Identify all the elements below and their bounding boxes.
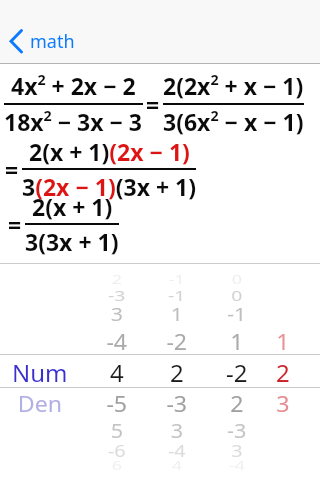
staticText: -1 xyxy=(227,300,247,324)
staticText: = xyxy=(5,154,19,185)
staticText: 0 xyxy=(232,270,242,285)
staticText: 4x2 + 2x − 2 xyxy=(11,70,136,102)
staticText: 2 xyxy=(170,356,184,386)
button[interactable] xyxy=(260,354,310,386)
staticText: 1 xyxy=(276,326,290,354)
staticText: -3 xyxy=(108,285,126,303)
staticText: 5 xyxy=(111,417,123,441)
staticText: -2 xyxy=(166,326,188,354)
staticText: 4 xyxy=(172,456,182,471)
button[interactable] xyxy=(10,354,70,386)
staticText: 2(x + 1)(2x − 1) xyxy=(29,136,190,167)
staticText: -3 xyxy=(166,388,188,416)
staticText: 3 xyxy=(111,300,123,324)
staticText: -2 xyxy=(226,356,248,386)
staticText: 2 xyxy=(112,270,122,285)
staticText: -4 xyxy=(229,456,245,471)
staticText: 3(3x + 1) xyxy=(25,226,119,257)
staticText: -4 xyxy=(106,326,128,354)
staticText: -1 xyxy=(169,270,185,285)
staticText: 2 xyxy=(230,388,244,416)
staticText: 1 xyxy=(171,300,183,324)
button[interactable] xyxy=(87,354,147,386)
staticText: 3 xyxy=(276,388,290,416)
staticText: -5 xyxy=(106,388,128,416)
staticText: 4 xyxy=(110,356,124,386)
staticText: math xyxy=(30,29,75,54)
staticText: -1 xyxy=(168,285,186,303)
staticText: Num xyxy=(12,356,68,386)
staticText: = xyxy=(146,89,160,120)
staticText: 18x2 − 3x − 3 xyxy=(4,106,143,138)
button[interactable] xyxy=(207,354,267,386)
staticText: -6 xyxy=(108,440,126,460)
staticText: 3(6x2 − x − 1) xyxy=(163,106,304,138)
staticText: 3 xyxy=(171,417,183,441)
staticText: Den xyxy=(18,388,62,416)
button[interactable] xyxy=(147,354,207,386)
staticText: = xyxy=(8,209,22,240)
staticText: -3 xyxy=(227,417,247,441)
staticText: 6 xyxy=(112,456,122,471)
staticText: 2(x + 1) xyxy=(32,191,113,222)
staticText: 0 xyxy=(231,285,243,303)
button[interactable]: math xyxy=(6,26,75,56)
staticText: 3 xyxy=(231,440,243,460)
staticText: 3(2x − 1)(3x + 1) xyxy=(22,171,196,202)
staticText: 2(2x2 + x − 1) xyxy=(163,70,304,102)
staticText: 2 xyxy=(276,356,290,386)
staticText: 1 xyxy=(230,326,244,354)
staticText: -4 xyxy=(168,440,186,460)
